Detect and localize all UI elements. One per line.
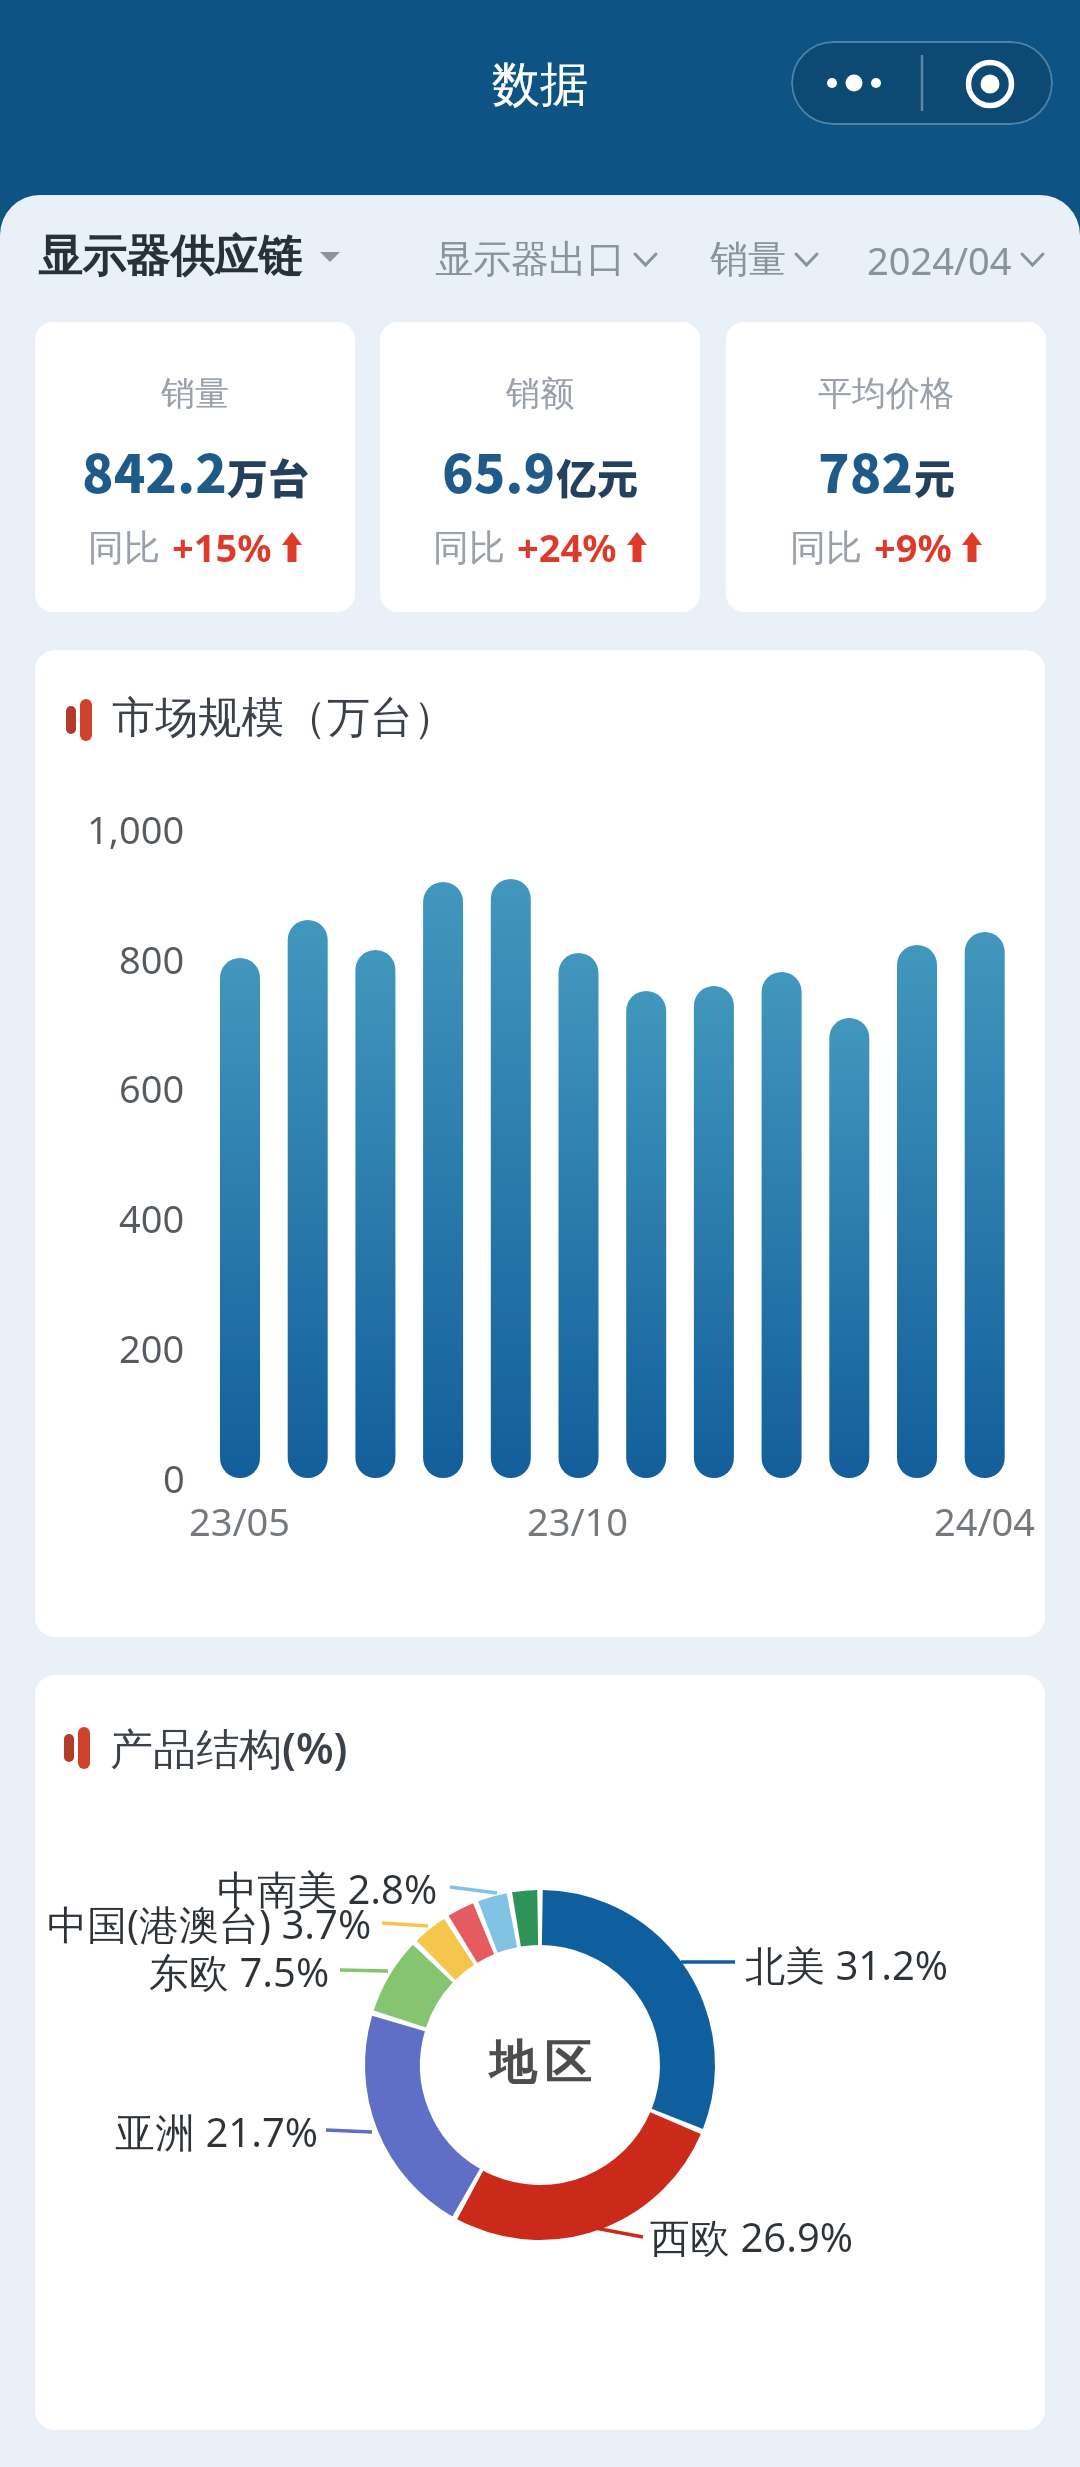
staticText: 元 — [914, 446, 955, 505]
staticText: 万台 — [227, 446, 309, 505]
staticText: +15% — [172, 521, 272, 573]
staticText: 同比 — [88, 525, 160, 570]
staticText: 显示器供应链 — [38, 229, 302, 284]
staticText: 销额 — [506, 372, 574, 415]
staticText: 亚洲 21.7% — [115, 2104, 318, 2159]
staticText: +24% — [517, 521, 617, 573]
staticText: 2024/04 — [867, 234, 1012, 284]
staticText: 600 — [119, 1062, 185, 1114]
staticText: 400 — [119, 1192, 185, 1244]
staticText: 65.9 — [442, 433, 556, 508]
staticText: 亿元 — [556, 446, 638, 505]
staticText: 842.2 — [82, 433, 227, 508]
staticText: 北美 31.2% — [745, 1937, 948, 1992]
staticText: 800 — [119, 933, 185, 985]
button[interactable]: 显示器出口 — [435, 234, 656, 284]
button[interactable] — [791, 41, 1053, 125]
staticText: 同比 — [790, 525, 862, 570]
button[interactable]: 平均价格 — [726, 322, 1046, 612]
staticText: 同比 — [433, 525, 505, 570]
staticText: 东欧 7.5% — [149, 1944, 330, 1999]
staticText: 西欧 26.9% — [650, 2209, 853, 2264]
staticText: 24/04 — [934, 1495, 1036, 1547]
button[interactable]: 显示器供应链 — [38, 226, 340, 286]
staticText: 产品结构(%) — [110, 1718, 348, 1777]
staticText: 销量 — [161, 372, 229, 415]
staticText: 平均价格 — [818, 372, 954, 415]
staticText: 数据 — [492, 55, 588, 115]
staticText: 地区 — [485, 2034, 595, 2093]
button[interactable]: 2024/04 — [867, 234, 1043, 284]
staticText: 0 — [163, 1452, 185, 1504]
staticText: 23/05 — [189, 1495, 291, 1547]
staticText: 200 — [119, 1322, 185, 1374]
staticText: 销量 — [710, 235, 786, 283]
staticText: 显示器出口 — [435, 235, 625, 283]
staticText: 1,000 — [87, 803, 185, 855]
button[interactable]: 销量 — [710, 234, 817, 284]
staticText: +9% — [874, 521, 952, 573]
button[interactable]: 销量 — [35, 322, 355, 612]
staticText: 782 — [818, 433, 914, 508]
staticText: 市场规模（万台） — [112, 691, 456, 745]
staticText: 中国(港澳台) 3.7% — [47, 1896, 372, 1951]
button[interactable]: 销额 — [380, 322, 700, 612]
staticText: 中南美 2.8% — [217, 1861, 438, 1916]
staticText: 23/10 — [527, 1495, 629, 1547]
